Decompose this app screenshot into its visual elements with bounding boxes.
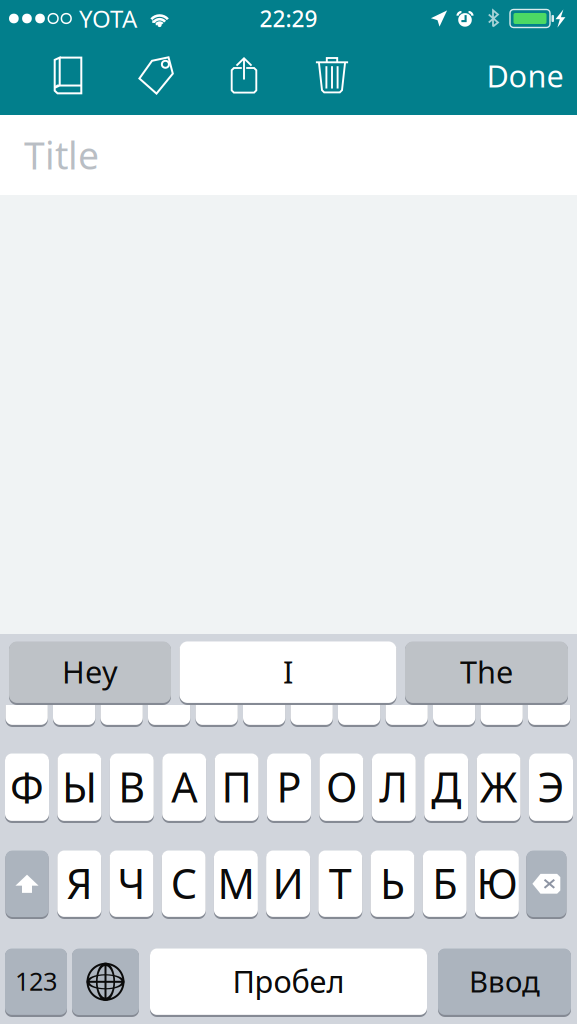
button[interactable]: Delete <box>288 42 376 108</box>
staticText: Б <box>432 856 457 910</box>
button[interactable]: Ч <box>109 851 153 919</box>
staticText: Ч <box>117 856 145 910</box>
staticText: В <box>118 759 145 814</box>
staticText: Ю <box>476 856 517 910</box>
staticText: Л <box>379 759 408 814</box>
button[interactable]: О <box>319 754 363 823</box>
staticText: Д <box>431 759 461 814</box>
button[interactable]: I <box>179 642 396 705</box>
button[interactable]: Ввод <box>438 949 571 1017</box>
button[interactable]: Switch keyboard <box>72 949 139 1017</box>
button[interactable]: Hey <box>9 642 171 705</box>
staticText: YOTA <box>79 3 137 34</box>
staticText: С <box>171 856 197 910</box>
button[interactable]: Й <box>5 658 48 727</box>
button[interactable]: З <box>433 658 475 727</box>
staticText: П <box>222 759 252 814</box>
button[interactable]: Ъ <box>528 658 570 727</box>
button[interactable]: Я <box>57 851 101 919</box>
staticText: Ц <box>59 647 90 702</box>
button[interactable]: Е <box>195 658 238 727</box>
staticText: 22:29 <box>259 3 317 33</box>
button[interactable]: Ш <box>338 658 380 727</box>
staticText: У <box>109 647 134 702</box>
button[interactable]: Ф <box>5 754 49 823</box>
staticText: Ь <box>380 856 405 910</box>
button[interactable]: Done <box>475 42 575 108</box>
button[interactable]: Б <box>423 851 467 919</box>
button[interactable]: Ы <box>57 754 101 823</box>
button[interactable]: А <box>162 754 206 823</box>
button[interactable]: Т <box>318 851 362 919</box>
button[interactable]: Э <box>529 754 573 823</box>
button[interactable]: Tags <box>112 42 200 108</box>
button[interactable]: П <box>215 754 259 823</box>
staticText: А <box>171 759 197 814</box>
button[interactable]: Р <box>267 754 311 823</box>
button[interactable]: Х <box>480 658 523 727</box>
button[interactable]: Ж <box>477 754 521 823</box>
button[interactable]: Notebook <box>24 42 112 108</box>
staticText: Title <box>24 130 99 180</box>
button[interactable]: В <box>110 754 154 823</box>
staticText: К <box>156 647 182 702</box>
staticText: Т <box>329 856 352 910</box>
button[interactable]: М <box>214 851 258 919</box>
staticText: Щ <box>386 647 428 702</box>
staticText: Пробел <box>232 961 344 1001</box>
staticText: I <box>283 651 293 692</box>
button[interactable]: Ц <box>53 658 95 727</box>
staticText: Ф <box>10 759 44 814</box>
button[interactable]: Д <box>424 754 468 823</box>
button[interactable]: Пробел <box>150 949 427 1017</box>
button[interactable]: Г <box>290 658 333 727</box>
button[interactable]: Share <box>200 42 288 108</box>
button[interactable]: Shift <box>5 851 48 919</box>
button[interactable]: Щ <box>385 658 428 727</box>
staticText: Ввод <box>469 961 540 1000</box>
staticText: Ы <box>62 759 97 814</box>
staticText: М <box>217 856 254 910</box>
staticText: О <box>326 759 357 814</box>
button[interactable]: Ь <box>370 851 414 919</box>
staticText: Э <box>537 759 564 814</box>
button[interactable]: К <box>148 658 190 727</box>
staticText: The <box>460 651 513 692</box>
staticText: Я <box>66 856 92 910</box>
button[interactable]: The <box>405 642 568 705</box>
staticText: 123 <box>15 964 57 998</box>
button[interactable]: Л <box>372 754 416 823</box>
button[interactable]: У <box>100 658 143 727</box>
staticText: Ж <box>480 759 517 814</box>
staticText: Р <box>276 759 301 814</box>
button[interactable]: Ю <box>475 851 519 919</box>
staticText: Hey <box>62 651 118 692</box>
button[interactable]: С <box>162 851 206 919</box>
staticText: З <box>442 647 466 702</box>
button[interactable]: 123 <box>5 949 67 1017</box>
button[interactable]: И <box>266 851 310 919</box>
staticText: Х <box>490 647 514 702</box>
button[interactable]: Delete <box>526 851 566 919</box>
staticText: И <box>273 856 304 910</box>
button[interactable]: Н <box>243 658 285 727</box>
staticText: Done <box>486 55 563 96</box>
